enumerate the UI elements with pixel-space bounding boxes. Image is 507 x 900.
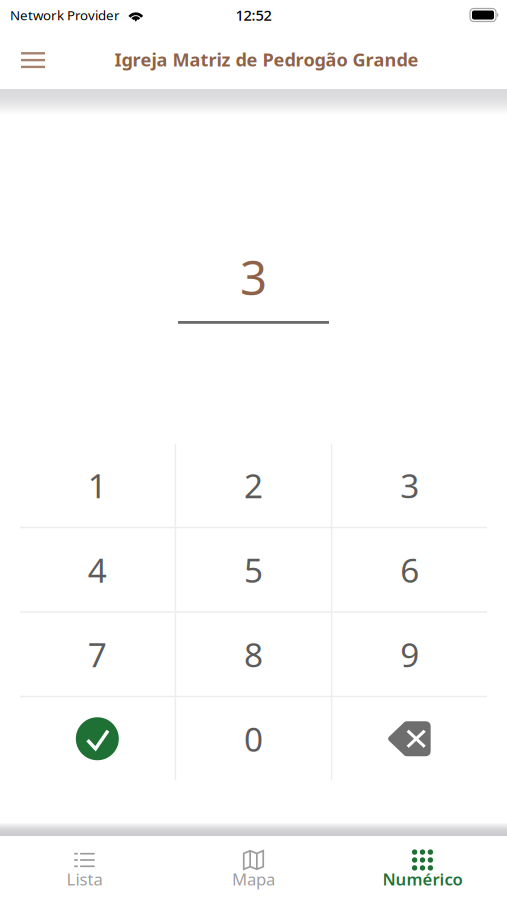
staticText: 1 xyxy=(88,463,107,507)
staticText: 5 xyxy=(244,548,263,592)
staticText: 6 xyxy=(400,548,419,592)
staticText: Igreja Matriz de Pedrogão Grande xyxy=(114,47,418,72)
button[interactable]: 0 xyxy=(176,697,331,780)
staticText: 4 xyxy=(88,548,107,592)
staticText: Network Provider xyxy=(10,6,120,24)
button[interactable]: Apagar xyxy=(332,697,487,780)
staticText: Lista xyxy=(66,868,102,890)
button[interactable]: 5 xyxy=(176,528,331,611)
staticText: 12:52 xyxy=(235,5,271,25)
button[interactable]: 1 xyxy=(20,444,175,527)
button[interactable]: 4 xyxy=(20,528,175,611)
button[interactable]: 3 xyxy=(332,444,487,527)
staticText: 3 xyxy=(400,463,419,507)
button[interactable]: 8 xyxy=(176,613,331,696)
button[interactable]: 7 xyxy=(20,613,175,696)
staticText: 2 xyxy=(244,463,263,507)
staticText: Numérico xyxy=(382,868,462,890)
button[interactable]: 6 xyxy=(332,528,487,611)
button[interactable]: 2 xyxy=(176,444,331,527)
staticText: 8 xyxy=(244,632,263,676)
button[interactable]: Mapa xyxy=(169,833,338,900)
staticText: 7 xyxy=(88,632,107,676)
button[interactable]: Menu xyxy=(0,38,52,81)
button[interactable]: Lista xyxy=(0,833,169,900)
button[interactable]: 9 xyxy=(332,613,487,696)
staticText: 9 xyxy=(400,632,419,676)
button[interactable]: Numérico xyxy=(338,833,507,900)
staticText: 3 xyxy=(240,245,267,309)
button[interactable]: Confirmar xyxy=(20,697,175,780)
staticText: 0 xyxy=(244,717,263,761)
staticText: Mapa xyxy=(232,868,275,890)
